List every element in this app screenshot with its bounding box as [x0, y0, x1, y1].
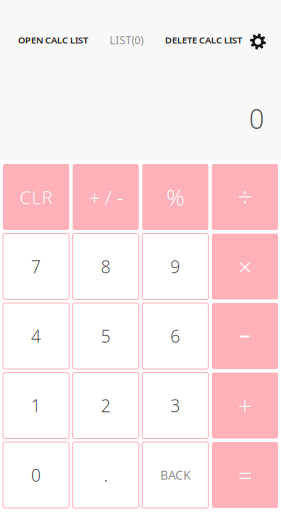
- button[interactable]: −: [212, 303, 278, 369]
- button[interactable]: Settings: [250, 30, 266, 49]
- button[interactable]: 4: [3, 303, 69, 369]
- button[interactable]: 8: [73, 233, 139, 299]
- staticText: 1: [31, 394, 41, 417]
- button[interactable]: ×: [212, 233, 278, 299]
- button[interactable]: OPEN CALC LIST: [18, 34, 88, 46]
- staticText: 3: [170, 394, 180, 417]
- button[interactable]: =: [212, 442, 278, 508]
- staticText: −: [239, 324, 250, 348]
- button[interactable]: 2: [73, 372, 139, 438]
- staticText: 4: [31, 324, 41, 347]
- button[interactable]: +: [212, 372, 278, 438]
- button[interactable]: 5: [73, 303, 139, 369]
- staticText: 5: [101, 324, 111, 347]
- staticText: ÷: [237, 179, 252, 215]
- button[interactable]: 6: [142, 303, 208, 369]
- button[interactable]: DELETE CALC LIST: [165, 34, 242, 46]
- staticText: %: [166, 182, 184, 212]
- staticText: OPEN CALC LIST: [18, 34, 88, 46]
- button[interactable]: ÷: [212, 164, 278, 230]
- staticText: 7: [31, 255, 41, 278]
- staticText: +: [238, 390, 252, 421]
- staticText: 9: [170, 255, 180, 278]
- button[interactable]: 9: [142, 233, 208, 299]
- staticText: 0: [31, 463, 41, 486]
- staticText: 0: [249, 101, 264, 136]
- staticText: CLR: [20, 185, 53, 209]
- button[interactable]: %: [142, 164, 208, 230]
- button[interactable]: .: [73, 442, 139, 508]
- button[interactable]: 7: [3, 233, 69, 299]
- button[interactable]: 0: [3, 442, 69, 508]
- button[interactable]: + / -: [73, 164, 139, 230]
- staticText: ×: [238, 251, 252, 282]
- button[interactable]: BACK: [142, 442, 208, 508]
- button[interactable]: 1: [3, 372, 69, 438]
- staticText: 8: [101, 255, 111, 278]
- staticText: DELETE CALC LIST: [165, 34, 242, 46]
- button[interactable]: CLR: [3, 164, 69, 230]
- staticText: LIST(0): [109, 33, 143, 47]
- staticText: 2: [101, 394, 111, 417]
- staticText: 6: [170, 324, 180, 347]
- staticText: =: [238, 458, 252, 492]
- staticText: .: [104, 463, 108, 486]
- button[interactable]: 3: [142, 372, 208, 438]
- staticText: BACK: [160, 467, 190, 483]
- staticText: + / -: [89, 184, 123, 210]
